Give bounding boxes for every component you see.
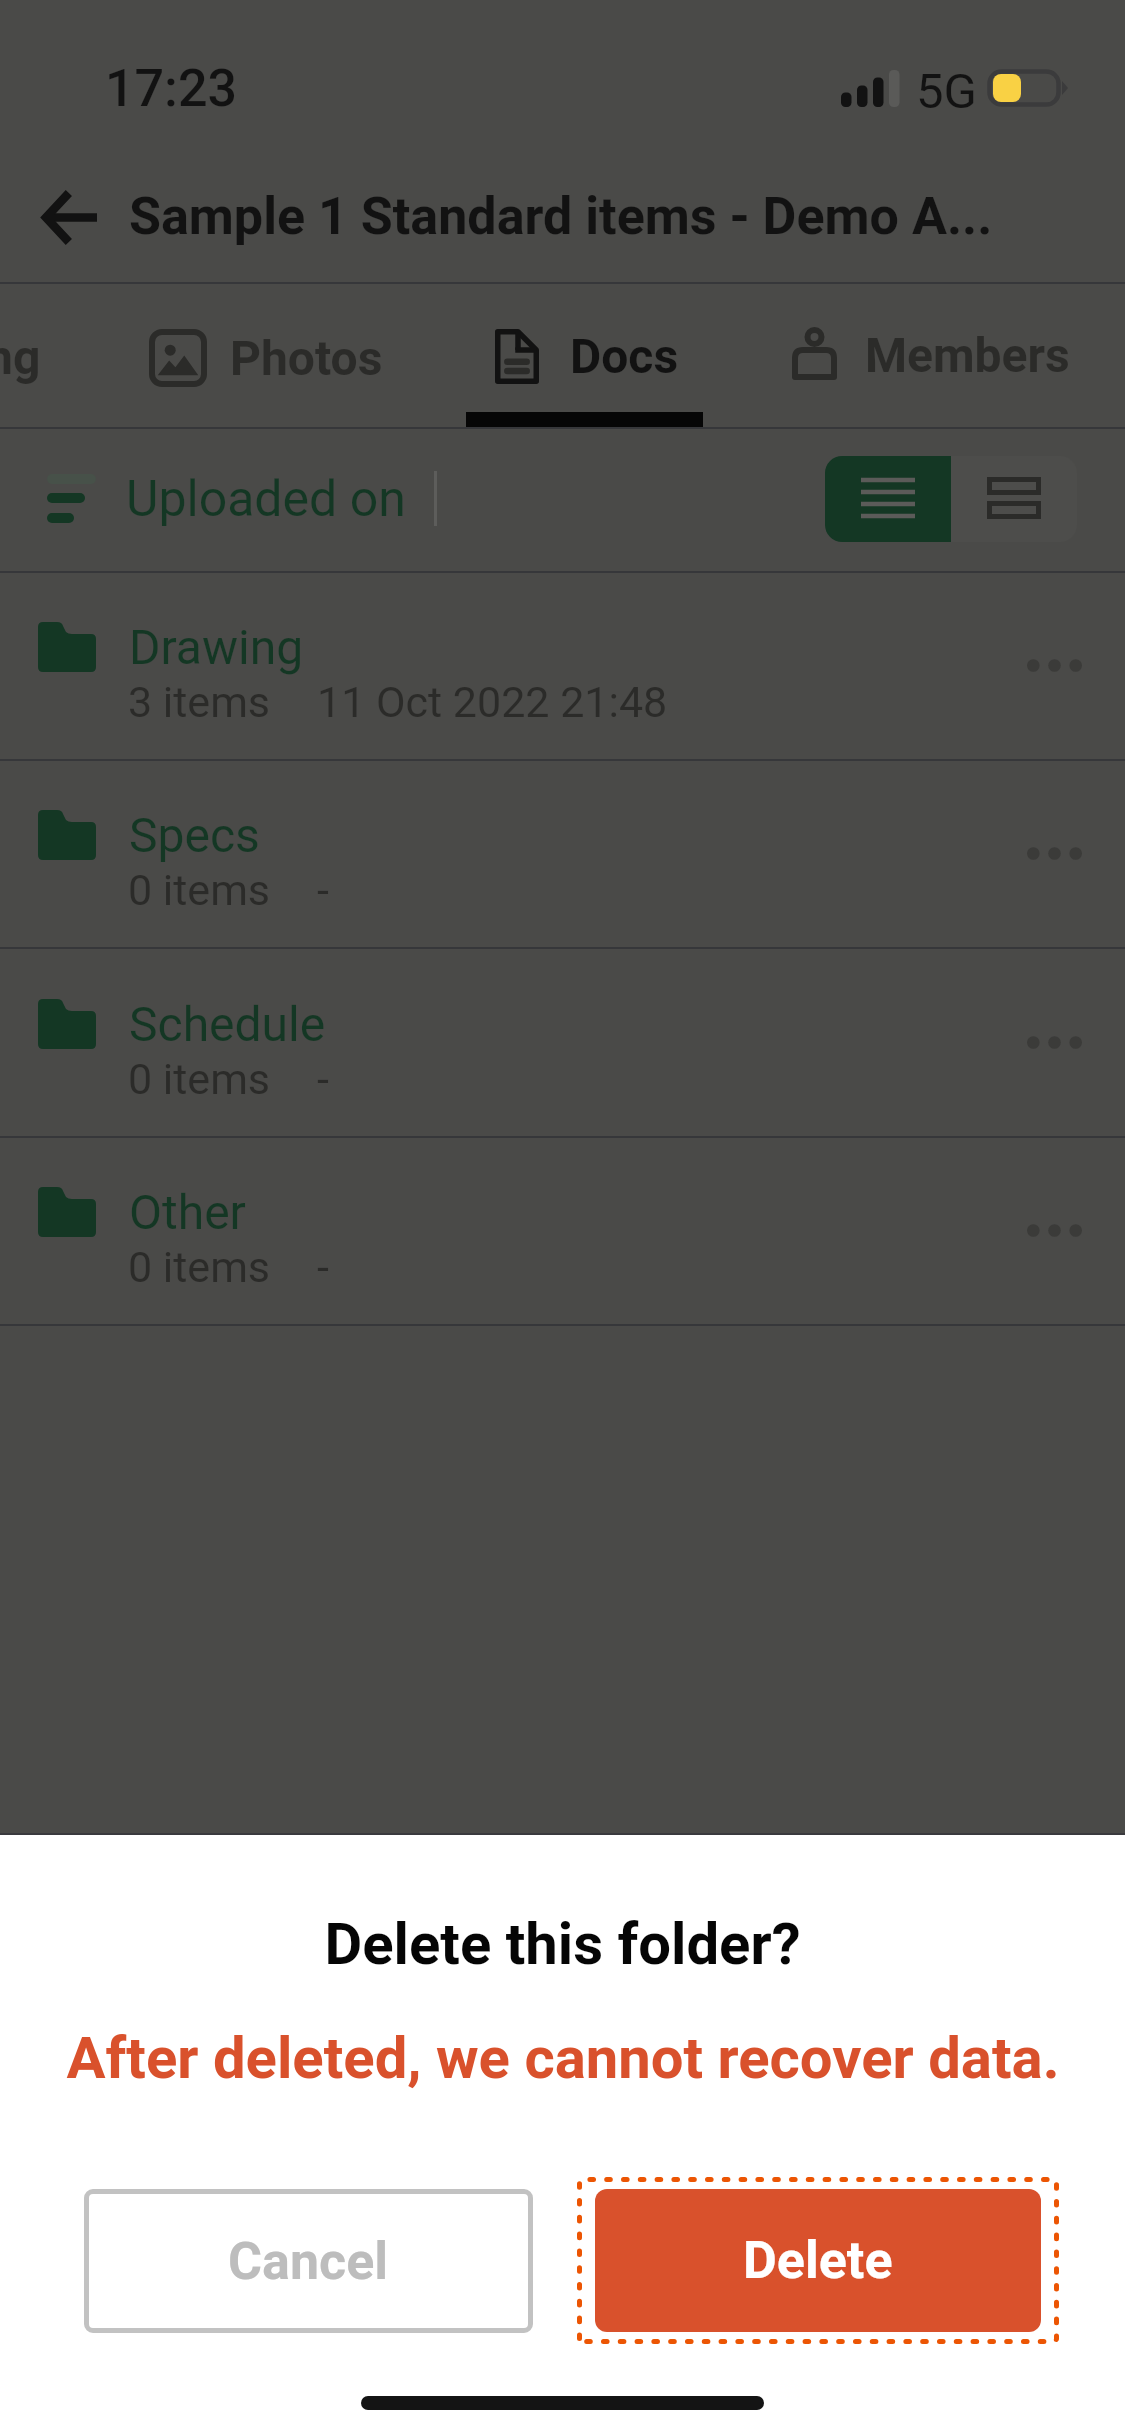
staticText: -: [317, 1054, 329, 1104]
staticText: Docs: [570, 328, 679, 384]
button[interactable]: Photos: [130, 284, 400, 429]
staticText: Specs: [129, 807, 260, 863]
button[interactable]: Back: [12, 159, 128, 275]
button[interactable]: Cancel: [84, 2189, 533, 2333]
button[interactable]: ng: [0, 284, 41, 429]
staticText: Schedule: [129, 996, 326, 1052]
staticText: Uploaded on: [126, 470, 406, 529]
button[interactable]: Docs: [440, 284, 730, 429]
button[interactable]: List view: [825, 456, 951, 542]
staticText: 0 items: [128, 1242, 271, 1292]
staticText: Delete this folder?: [324, 1910, 801, 1978]
button[interactable]: Specs: [0, 761, 1125, 949]
button[interactable]: Uploaded on: [47, 472, 406, 531]
button[interactable]: Other: [0, 1138, 1125, 1326]
staticText: 0 items: [128, 1054, 271, 1104]
staticText: Sample 1 Standard items - Demo A...: [129, 186, 993, 247]
staticText: Delete: [743, 2230, 893, 2291]
staticText: 3 items: [128, 677, 271, 727]
button[interactable]: Members: [750, 284, 1125, 429]
button[interactable]: Grid view: [951, 456, 1077, 542]
staticText: ng: [0, 329, 41, 385]
staticText: 17:23: [105, 58, 238, 119]
staticText: 11 Oct 2022 21:48: [317, 677, 668, 727]
staticText: Photos: [230, 330, 383, 386]
staticText: Drawing: [129, 619, 304, 675]
staticText: Other: [129, 1184, 246, 1240]
staticText: -: [317, 1242, 329, 1292]
staticText: 5G: [916, 63, 977, 120]
staticText: Cancel: [228, 2231, 389, 2292]
staticText: Members: [865, 327, 1070, 383]
staticText: -: [317, 865, 329, 915]
staticText: After deleted, we cannot recover data.: [66, 2024, 1060, 2092]
button[interactable]: Drawing: [0, 573, 1125, 761]
staticText: 0 items: [128, 865, 271, 915]
button[interactable]: Delete: [595, 2189, 1041, 2332]
button[interactable]: Schedule: [0, 950, 1125, 1138]
